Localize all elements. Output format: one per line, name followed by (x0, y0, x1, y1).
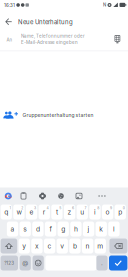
button[interactable]: . (96, 255, 108, 270)
button[interactable]: Kontakte auswählen (109, 31, 125, 47)
button[interactable]: Senden (109, 255, 127, 270)
staticText: l (113, 225, 115, 233)
staticText: 9 (110, 206, 112, 210)
staticText: n (86, 242, 90, 250)
button[interactable]: Zwischenablage (17, 190, 29, 202)
staticText: e (30, 208, 34, 216)
staticText: q (4, 208, 8, 216)
button[interactable]: Google Suche (2, 190, 14, 202)
staticText: Gruppenunterhaltung starten (23, 112, 94, 118)
button[interactable]: o (102, 204, 113, 219)
button[interactable]: f (45, 221, 56, 236)
staticText: u (80, 208, 84, 216)
button[interactable]: c (44, 238, 55, 253)
button[interactable]: v (57, 238, 68, 253)
staticText: 8 (97, 206, 99, 210)
staticText: b (73, 242, 77, 250)
button[interactable]: j (83, 221, 94, 236)
button[interactable]: Leertaste (45, 255, 97, 270)
button[interactable]: k (96, 221, 107, 236)
button[interactable]: i (89, 204, 101, 219)
button[interactable]: e (26, 204, 37, 219)
button[interactable]: d (32, 221, 43, 236)
staticText: a (11, 225, 15, 233)
staticText: z (68, 208, 72, 216)
button[interactable]: @ (20, 255, 31, 270)
button[interactable]: u (77, 204, 88, 219)
staticText: 4 (47, 206, 49, 210)
staticText: An (7, 37, 13, 42)
button[interactable]: r (39, 204, 50, 219)
staticText: j (88, 225, 90, 233)
staticText: v (60, 242, 64, 250)
staticText: ?123 (4, 260, 14, 266)
staticText: 0 (123, 206, 125, 210)
staticText: f (50, 225, 52, 233)
button[interactable]: l (108, 221, 120, 236)
staticText: h (74, 225, 78, 233)
button[interactable]: g (58, 221, 69, 236)
button[interactable]: w (13, 204, 25, 219)
button[interactable]: a (7, 221, 18, 236)
staticText: Neue Unterhaltung (18, 18, 73, 26)
staticText: w (16, 208, 21, 216)
button[interactable]: Weitere Optionen (95, 190, 109, 202)
staticText: o (106, 208, 110, 216)
button[interactable]: Löschen (109, 238, 127, 253)
button[interactable]: m (95, 238, 106, 253)
button[interactable]: Zurück (0, 13, 17, 30)
staticText: Name, Telefonnummer oder (21, 33, 85, 39)
staticText: d (36, 225, 40, 233)
staticText: N (103, 2, 106, 8)
staticText: c (48, 242, 52, 250)
button[interactable]: t (51, 204, 63, 219)
button[interactable]: q (1, 204, 12, 219)
button[interactable]: ?123 (1, 255, 18, 270)
staticText: 3 (34, 206, 36, 210)
button[interactable]: Emoji (33, 255, 44, 270)
staticText: y (22, 242, 26, 250)
staticText: t (56, 208, 58, 216)
button[interactable]: p (115, 204, 126, 219)
button[interactable]: GIF (73, 190, 85, 202)
staticText: @ (22, 259, 28, 267)
staticText: m (97, 242, 103, 250)
button[interactable]: Umschalttaste (1, 238, 17, 253)
staticText: g (61, 225, 65, 233)
staticText: x (35, 242, 39, 250)
staticText: 16:31 (4, 3, 15, 8)
button[interactable]: b (69, 238, 81, 253)
button[interactable]: z (64, 204, 75, 219)
staticText: s (23, 225, 27, 233)
staticText: r (43, 208, 46, 216)
staticText: k (99, 225, 103, 233)
staticText: i (94, 208, 96, 216)
button[interactable]: y (19, 238, 30, 253)
staticText: 6 (72, 206, 74, 210)
button[interactable]: Sticker (55, 190, 67, 202)
staticText: 7 (85, 206, 87, 210)
staticText: 5 (59, 206, 61, 210)
button[interactable]: s (20, 221, 31, 236)
staticText: 2 (21, 206, 23, 210)
staticText: 1 (10, 206, 11, 210)
button[interactable]: x (31, 238, 43, 253)
staticText: . (101, 259, 103, 267)
button[interactable]: n (82, 238, 93, 253)
staticText: p (118, 208, 122, 216)
button[interactable]: h (70, 221, 81, 236)
staticText: E-Mail-Adresse eingeben (21, 40, 78, 45)
button[interactable]: Einstellungen (36, 190, 48, 202)
